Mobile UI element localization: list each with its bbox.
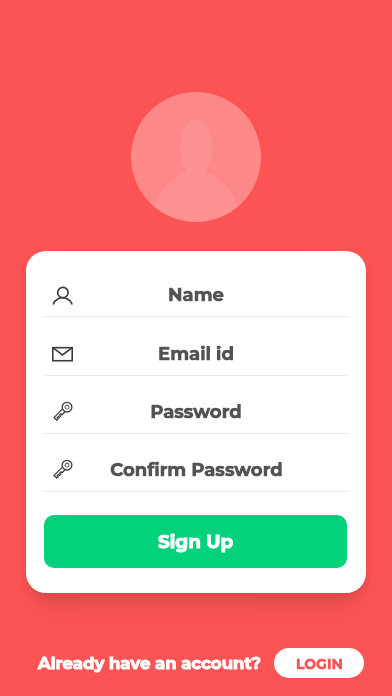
- staticText: Email id: [158, 343, 234, 365]
- staticText: LOGIN: [296, 655, 343, 672]
- staticText: Sign Up: [158, 530, 234, 552]
- staticText: Name: [168, 284, 224, 306]
- button[interactable]: Name: [26, 266, 366, 323]
- staticText: Password: [150, 401, 242, 423]
- button[interactable]: Add profile photo: [131, 92, 261, 222]
- button[interactable]: Confirm Password: [26, 441, 366, 498]
- button[interactable]: Password: [26, 383, 366, 440]
- button[interactable]: Email id: [26, 325, 366, 382]
- button[interactable]: Sign Up: [44, 515, 347, 568]
- staticText: Already have an account?: [38, 653, 262, 673]
- staticText: Confirm Password: [110, 459, 283, 481]
- button[interactable]: LOGIN: [274, 648, 364, 678]
